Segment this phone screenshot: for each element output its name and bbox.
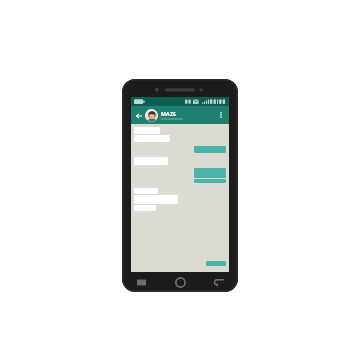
button[interactable]: Sent message [194,146,226,153]
button[interactable]: Sent message [194,179,226,183]
staticText: MAZE [161,110,177,117]
button[interactable]: Sent message [206,261,226,266]
button[interactable]: Back [211,274,227,290]
button[interactable]: Sent message [194,168,226,178]
button[interactable]: Home [171,273,189,291]
button[interactable]: Back [134,111,143,120]
button[interactable]: Recent apps [133,274,149,290]
button[interactable]: Contact photo [145,109,158,122]
button[interactable]: Back [131,106,229,124]
button[interactable]: More options [216,110,226,120]
